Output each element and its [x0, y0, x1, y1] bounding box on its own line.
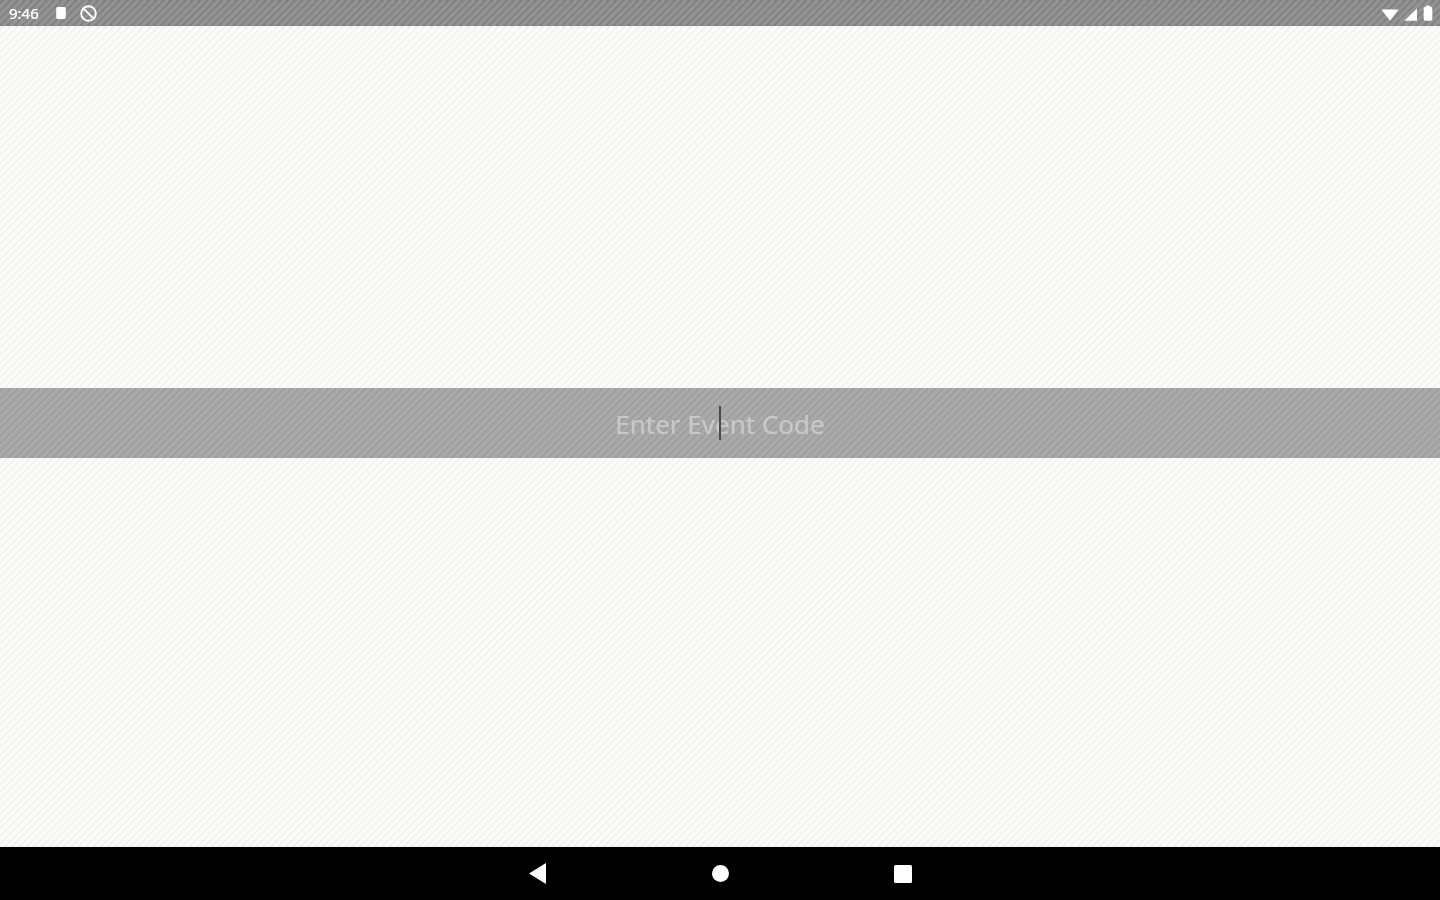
button[interactable]: Back — [507, 847, 567, 900]
button[interactable]: Home — [690, 847, 750, 900]
staticText: 9:46 — [9, 3, 39, 23]
button[interactable]: Recent apps — [873, 847, 933, 900]
staticText: Enter Event Code — [615, 406, 825, 441]
button[interactable]: Enter Event Code — [0, 388, 1440, 458]
